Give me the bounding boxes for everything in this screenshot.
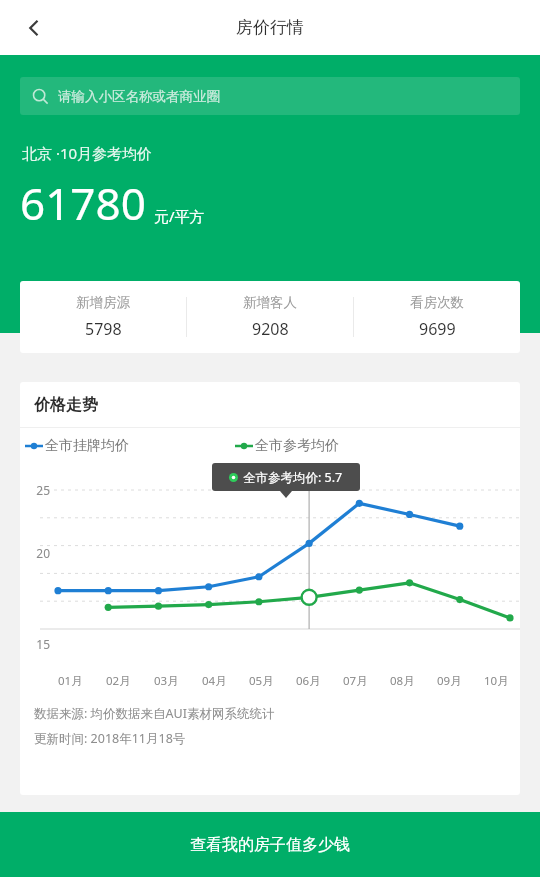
button[interactable]: Back <box>12 6 56 50</box>
staticText: 03月 <box>154 673 179 689</box>
staticText: 06月 <box>296 673 321 689</box>
staticText: 01月 <box>58 673 83 689</box>
button[interactable]: 请输入小区名称或者商业圈 <box>20 77 520 115</box>
staticText: 元/平方 <box>154 206 205 226</box>
staticText: 61780 <box>20 173 146 233</box>
staticText: 全市参考均价 <box>255 437 339 455</box>
staticText: 15 <box>20 636 50 652</box>
staticText: 02月 <box>106 673 131 689</box>
button[interactable]: 查看我的房子值多少钱 <box>0 812 540 877</box>
staticText: 10月 <box>484 673 509 689</box>
button[interactable]: 看房次数 <box>354 281 520 353</box>
staticText: 北京 ·10月参考均价 <box>22 143 153 163</box>
staticText: 新增客人 <box>243 294 297 311</box>
staticText: 更新时间: 2018年11月18号 <box>34 730 186 747</box>
staticText: 04月 <box>202 673 227 689</box>
staticText: 9208 <box>252 318 289 340</box>
staticText: 价格走势 <box>34 395 98 415</box>
staticText: 全市参考均价: 5.7 <box>243 469 343 486</box>
staticText: 全市挂牌均价 <box>45 437 129 455</box>
staticText: 数据来源: 均价数据来自AUI素材网系统统计 <box>34 705 275 722</box>
staticText: 05月 <box>249 673 274 689</box>
button[interactable]: 新增客人 <box>187 281 353 353</box>
staticText: 07月 <box>343 673 368 689</box>
staticText: 请输入小区名称或者商业圈 <box>58 88 220 105</box>
staticText: 25 <box>20 482 50 498</box>
staticText: 08月 <box>390 673 415 689</box>
staticText: 9699 <box>419 318 456 340</box>
staticText: 看房次数 <box>410 294 464 311</box>
staticText: 09月 <box>437 673 462 689</box>
staticText: 20 <box>20 545 50 561</box>
staticText: 5798 <box>85 318 122 340</box>
staticText: 新增房源 <box>76 294 130 311</box>
staticText: 房价行情 <box>236 17 304 38</box>
staticText: 查看我的房子值多少钱 <box>190 835 350 855</box>
button[interactable]: 新增房源 <box>20 281 186 353</box>
